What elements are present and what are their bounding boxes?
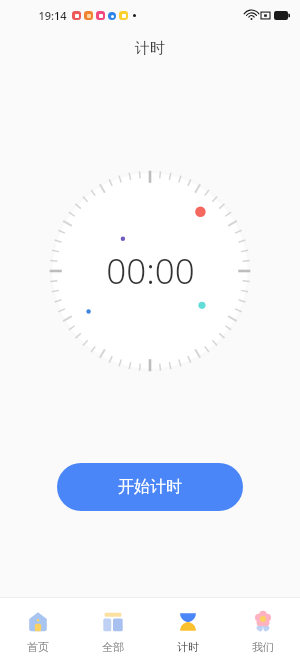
other: 计时 — [177, 611, 199, 633]
staticText: 开始计时 — [118, 477, 182, 497]
staticText: 首页 — [27, 640, 49, 654]
staticText: 19:14 — [38, 8, 67, 23]
staticText: 全部 — [102, 640, 124, 654]
staticText: 00:00 — [106, 247, 195, 295]
staticText: 我们 — [252, 640, 274, 654]
other: 首页 — [27, 611, 49, 633]
button[interactable]: 全部 — [75, 598, 150, 671]
other: 我们 — [252, 611, 274, 633]
staticText: 计时 — [135, 39, 165, 58]
button[interactable]: 首页 — [0, 598, 75, 671]
staticText: 计时 — [177, 640, 199, 654]
button[interactable]: 开始计时 — [57, 463, 243, 511]
button[interactable]: 我们 — [225, 598, 300, 671]
other: 全部 — [102, 611, 124, 633]
button[interactable]: 计时 — [150, 598, 225, 671]
